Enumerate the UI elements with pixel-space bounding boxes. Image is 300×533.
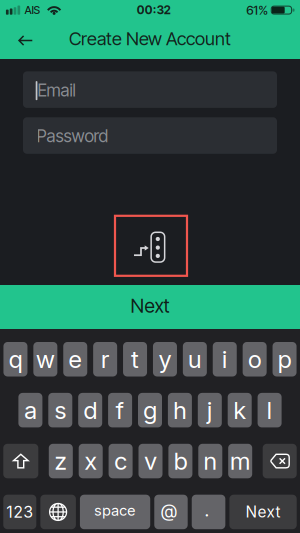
- button[interactable]: u: [183, 342, 207, 376]
- button[interactable]: f: [108, 393, 132, 427]
- staticText: h: [173, 396, 187, 425]
- button[interactable]: x: [79, 444, 103, 478]
- button[interactable]: Delete: [263, 444, 297, 478]
- staticText: m: [230, 446, 251, 475]
- staticText: space: [94, 502, 136, 519]
- button[interactable]: Next: [229, 495, 297, 529]
- staticText: Next: [130, 294, 169, 317]
- button[interactable]: Open shortcut: [115, 216, 187, 276]
- staticText: t: [131, 345, 139, 374]
- button[interactable]: z: [49, 444, 73, 478]
- staticText: k: [233, 396, 246, 425]
- button[interactable]: s: [48, 393, 72, 427]
- button[interactable]: d: [78, 393, 102, 427]
- staticText: y: [158, 345, 171, 374]
- staticText: @: [160, 500, 177, 522]
- staticText: z: [54, 446, 67, 475]
- staticText: v: [144, 446, 157, 475]
- staticText: o: [248, 345, 262, 374]
- button[interactable]: a: [18, 393, 42, 427]
- button[interactable]: Next keyboard: [40, 495, 76, 529]
- staticText: 61%: [246, 2, 268, 18]
- button[interactable]: k: [228, 393, 252, 427]
- staticText: j: [207, 396, 213, 425]
- button[interactable]: p: [273, 342, 297, 376]
- staticText: c: [114, 446, 127, 475]
- staticText: b: [173, 446, 187, 475]
- button[interactable]: Next: [0, 285, 300, 329]
- button[interactable]: i: [213, 342, 237, 376]
- staticText: l: [267, 396, 273, 425]
- staticText: Create New Account: [69, 27, 231, 49]
- button[interactable]: Shift: [3, 444, 38, 478]
- staticText: w: [36, 345, 55, 374]
- staticText: i: [222, 345, 228, 374]
- staticText: x: [84, 446, 97, 475]
- staticText: 123: [6, 502, 33, 522]
- button[interactable]: q: [3, 342, 27, 376]
- staticText: .: [204, 499, 209, 521]
- staticText: Next: [245, 503, 280, 521]
- button[interactable]: @: [154, 495, 188, 529]
- button[interactable]: b: [168, 444, 192, 478]
- staticText: g: [143, 396, 157, 425]
- button[interactable]: v: [138, 444, 162, 478]
- button[interactable]: r: [93, 342, 117, 376]
- staticText: p: [278, 345, 292, 374]
- staticText: s: [54, 396, 66, 425]
- staticText: Password: [37, 126, 109, 146]
- staticText: u: [188, 345, 202, 374]
- button[interactable]: space: [80, 495, 150, 529]
- button[interactable]: o: [243, 342, 267, 376]
- button[interactable]: n: [198, 444, 222, 478]
- staticText: a: [24, 396, 37, 425]
- button[interactable]: .: [192, 495, 225, 529]
- button[interactable]: y: [153, 342, 177, 376]
- staticText: d: [83, 396, 97, 425]
- button[interactable]: l: [258, 393, 282, 427]
- staticText: AIS: [25, 3, 41, 17]
- staticText: f: [116, 396, 125, 425]
- button[interactable]: Back: [9, 25, 40, 52]
- button[interactable]: c: [109, 444, 133, 478]
- staticText: 00:32: [137, 3, 171, 17]
- button[interactable]: m: [228, 444, 252, 478]
- staticText: e: [68, 345, 82, 374]
- staticText: n: [203, 446, 217, 475]
- button[interactable]: w: [33, 342, 57, 376]
- staticText: q: [8, 345, 22, 374]
- button[interactable]: g: [138, 393, 162, 427]
- staticText: Email: [37, 80, 75, 100]
- button[interactable]: t: [123, 342, 147, 376]
- button[interactable]: e: [63, 342, 87, 376]
- button[interactable]: h: [168, 393, 192, 427]
- staticText: r: [101, 345, 110, 374]
- button[interactable]: j: [198, 393, 222, 427]
- button[interactable]: 123: [3, 495, 36, 529]
